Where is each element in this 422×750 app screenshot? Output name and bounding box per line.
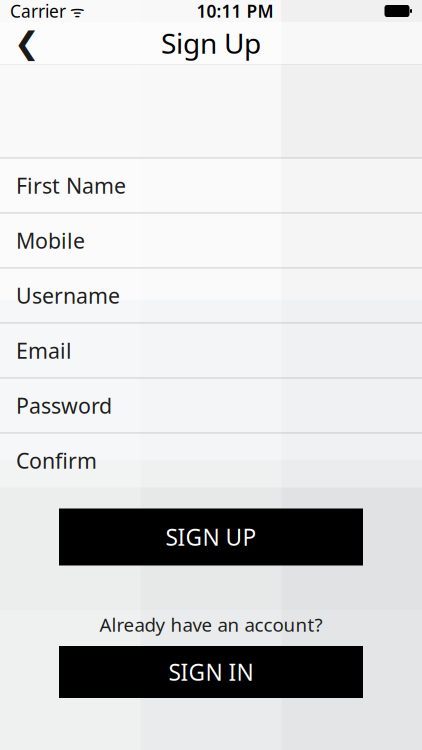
- staticText: 10:11 PM: [196, 0, 273, 22]
- staticText: ❮: [14, 26, 40, 60]
- staticText: Sign Up: [161, 24, 261, 62]
- button[interactable]: First Name: [0, 158, 422, 212]
- staticText: Username: [16, 281, 120, 310]
- staticText: Email: [16, 336, 72, 365]
- staticText: Already have an account?: [99, 612, 322, 637]
- button[interactable]: Password: [0, 378, 422, 432]
- button[interactable]: Email: [0, 323, 422, 377]
- button[interactable]: Back: [0, 22, 54, 64]
- staticText: First Name: [16, 171, 126, 200]
- staticText: Carrier: [10, 0, 66, 22]
- staticText: Password: [16, 391, 112, 420]
- button[interactable]: SIGN IN: [59, 646, 363, 698]
- button[interactable]: Mobile: [0, 213, 422, 267]
- staticText: Mobile: [16, 226, 85, 255]
- button[interactable]: Confirm: [0, 433, 422, 487]
- button[interactable]: SIGN UP: [59, 508, 363, 565]
- staticText: SIGN UP: [165, 522, 256, 552]
- staticText: SIGN IN: [168, 657, 253, 687]
- staticText: Confirm: [16, 446, 97, 475]
- button[interactable]: Username: [0, 268, 422, 322]
- staticText: ᯤ: [66, 0, 85, 22]
